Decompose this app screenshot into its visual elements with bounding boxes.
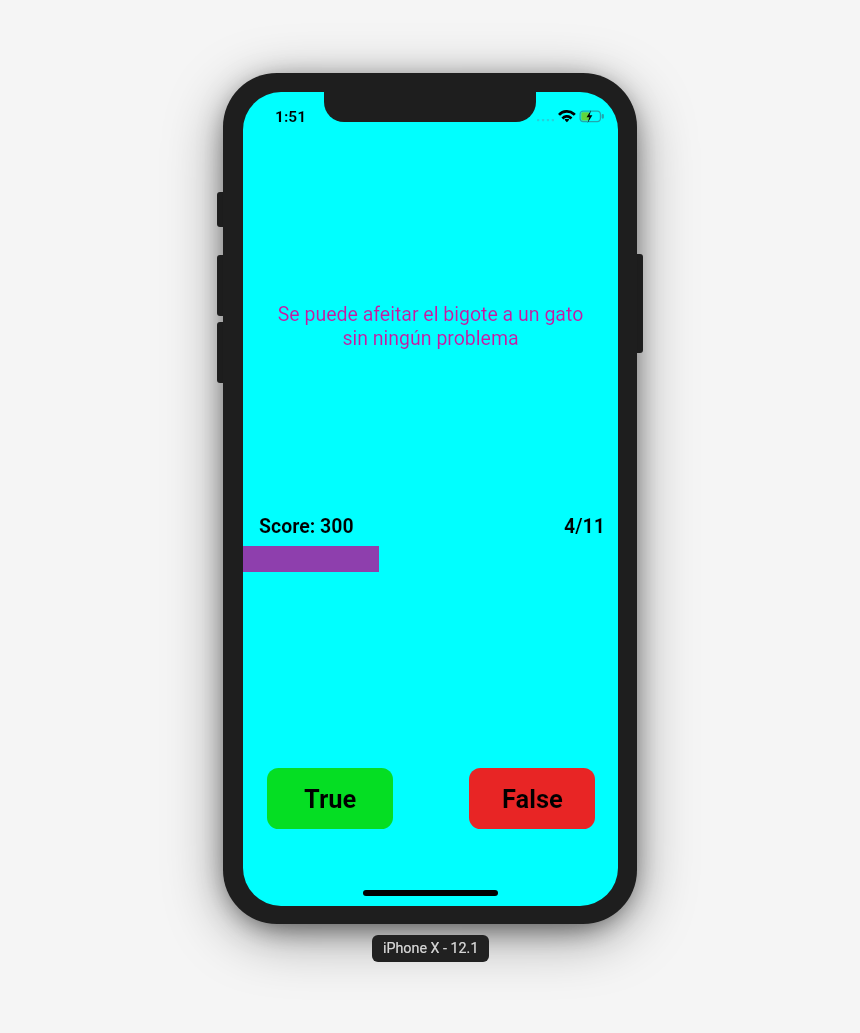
staticText: Score: 300	[259, 515, 354, 538]
staticText: True	[304, 784, 357, 814]
staticText: 4/11	[564, 515, 605, 538]
staticText: Se puede afeitar el bigote a un gato sin…	[263, 303, 598, 349]
staticText: iPhone X - 12.1	[383, 940, 479, 957]
other: Signal, Wi-Fi and battery status	[537, 107, 604, 127]
button[interactable]: False	[469, 768, 595, 829]
staticText: False	[502, 784, 563, 814]
button[interactable]: True	[267, 768, 393, 829]
staticText: 1:51	[275, 108, 307, 126]
